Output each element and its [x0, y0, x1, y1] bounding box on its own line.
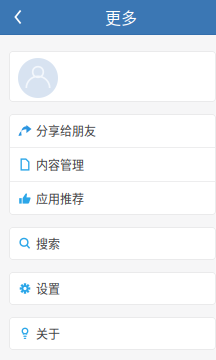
button[interactable]: 设置 [9, 272, 216, 305]
staticText: 设置 [36, 280, 60, 297]
button[interactable]: Back [3, 0, 33, 34]
staticText: 分享给朋友 [36, 122, 96, 139]
button[interactable]: 关于 [9, 317, 216, 350]
staticText: 应用推荐 [36, 190, 84, 207]
staticText: 内容管理 [36, 156, 84, 173]
staticText: 关于 [36, 325, 60, 342]
button[interactable]: 应用推荐 [9, 182, 216, 215]
button[interactable]: 搜索 [9, 227, 216, 260]
button[interactable]: 分享给朋友 [9, 114, 216, 147]
staticText: 搜索 [36, 235, 60, 252]
button[interactable]: 内容管理 [9, 148, 216, 181]
staticText: 更多 [105, 5, 137, 29]
